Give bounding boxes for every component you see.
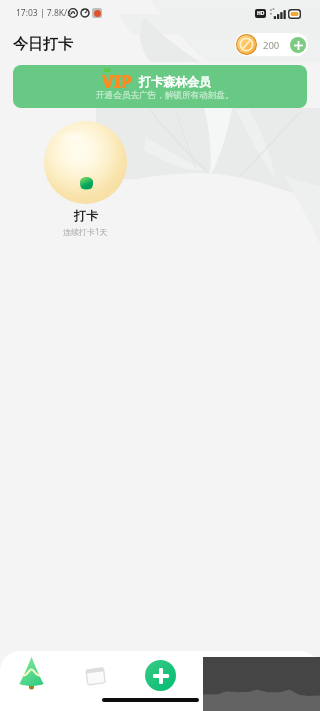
staticText: 打卡: [74, 208, 98, 223]
staticText: 开通会员去广告，解锁所有动刻盘。: [96, 90, 234, 101]
button[interactable]: 打卡: [44, 121, 127, 204]
button[interactable]: 森林: [8, 651, 54, 695]
staticText: 200: [263, 39, 280, 52]
staticText: HD: [257, 10, 265, 17]
button[interactable]: VIP: [13, 65, 307, 108]
button[interactable]: 日历: [72, 653, 118, 697]
staticText: 今日打卡: [13, 35, 73, 54]
button[interactable]: 200: [235, 33, 308, 56]
button[interactable]: 添加打卡: [137, 653, 183, 697]
staticText: 连续打卡1天: [63, 226, 108, 237]
staticText: 17:03 | 7.8K/s: [16, 7, 72, 19]
staticText: VIP: [102, 70, 133, 93]
staticText: 打卡森林会员: [139, 74, 211, 89]
